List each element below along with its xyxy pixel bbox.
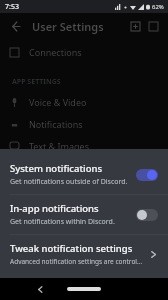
staticText: Notifications xyxy=(29,118,83,130)
staticText: 62% xyxy=(152,3,164,11)
button[interactable]: Text & Images xyxy=(0,135,168,157)
button[interactable]: Back xyxy=(32,281,48,297)
button[interactable]: Appearance xyxy=(0,157,168,179)
button[interactable]: Tweak notification settings xyxy=(0,235,168,273)
button[interactable]: More options xyxy=(144,17,162,35)
staticText: Voice & Video xyxy=(29,96,87,108)
staticText: Appearance xyxy=(29,162,80,174)
staticText: Behavior xyxy=(29,184,67,196)
button[interactable]: In-app notifications xyxy=(0,195,168,234)
button[interactable]: Back xyxy=(6,17,24,35)
staticText: System notifications xyxy=(10,162,103,175)
staticText: Advanced notification settings are contr… xyxy=(10,257,143,266)
button[interactable]: Notifications xyxy=(0,113,168,135)
button[interactable]: Voice & Video xyxy=(0,91,168,113)
button[interactable]: Connections xyxy=(0,41,168,63)
staticText: Get notifications outside of Discord. xyxy=(10,177,128,187)
staticText: Connections xyxy=(29,46,82,58)
staticText: User Settings xyxy=(32,19,104,34)
staticText: In-app notifications xyxy=(10,202,99,215)
staticText: Text & Images xyxy=(29,140,89,152)
button[interactable]: Home xyxy=(67,287,101,291)
staticText: Get notifications within Discord. xyxy=(10,217,115,227)
staticText: 7:53 xyxy=(5,2,19,12)
button[interactable]: Behavior xyxy=(0,179,168,201)
staticText: Tweak notification settings xyxy=(10,242,133,255)
button[interactable]: On xyxy=(136,169,158,181)
button[interactable]: Add xyxy=(126,17,144,35)
button[interactable]: Off xyxy=(136,209,158,221)
button[interactable]: System notifications xyxy=(0,155,168,194)
staticText: APP SETTINGS xyxy=(12,77,61,87)
